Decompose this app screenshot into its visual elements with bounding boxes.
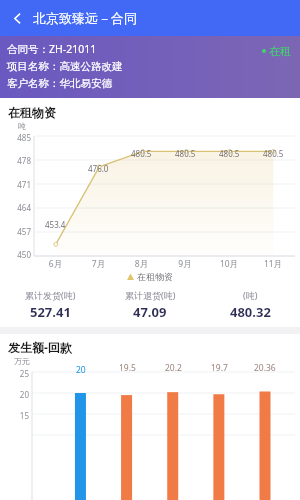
staticText: 20.2	[165, 362, 182, 374]
staticText: 476.0	[88, 163, 109, 174]
staticText: 20	[76, 364, 86, 376]
staticText: 万元	[14, 356, 30, 366]
staticText: 15	[0, 410, 29, 421]
staticText: 项目名称：高速公路改建	[7, 60, 123, 73]
staticText: 47.09	[133, 303, 167, 321]
staticText: 吨	[18, 121, 26, 131]
staticText: 471	[0, 179, 31, 190]
staticText: 453.4	[45, 219, 66, 230]
staticText: 10月	[207, 258, 251, 270]
staticText: 累计发货(吨)	[25, 289, 76, 301]
staticText: 北京致臻远－合同	[33, 10, 137, 26]
staticText: 在租物资	[137, 271, 173, 282]
staticText: 20	[0, 389, 29, 400]
staticText: (吨)	[243, 289, 258, 301]
staticText: 客户名称：华北易安德	[7, 77, 112, 90]
staticText: 480.5	[131, 148, 152, 159]
staticText: 485	[0, 132, 31, 143]
staticText: 480.5	[175, 148, 196, 159]
staticText: 480.32	[230, 303, 271, 321]
staticText: 450	[0, 249, 31, 260]
button[interactable]: Back	[3, 4, 31, 32]
staticText: 25	[0, 368, 29, 379]
staticText: 478	[0, 155, 31, 166]
staticText: 在租物资	[8, 105, 56, 120]
staticText: 11月	[251, 258, 295, 270]
staticText: 464	[0, 202, 31, 213]
staticText: 合同号：ZH-21011	[7, 42, 97, 56]
staticText: 480.5	[219, 148, 240, 159]
staticText: 9月	[163, 258, 207, 270]
staticText: 6月	[34, 258, 77, 270]
staticText: 累计退货(吨)	[125, 289, 176, 301]
staticText: 在租	[269, 44, 291, 58]
staticText: 发生额-回款	[8, 339, 72, 355]
button[interactable]: 累计退货(吨)	[100, 289, 200, 321]
staticText: 527.41	[30, 303, 71, 321]
staticText: 7月	[77, 258, 120, 270]
staticText: 19.5	[119, 362, 136, 374]
staticText: 457	[0, 226, 31, 237]
staticText: 19.7	[211, 362, 228, 374]
button[interactable]: (吨)	[200, 289, 300, 321]
button[interactable]: 累计发货(吨)	[0, 289, 100, 321]
staticText: 20.36	[254, 362, 276, 374]
staticText: 480.5	[263, 148, 284, 159]
staticText: 8月	[120, 258, 163, 270]
